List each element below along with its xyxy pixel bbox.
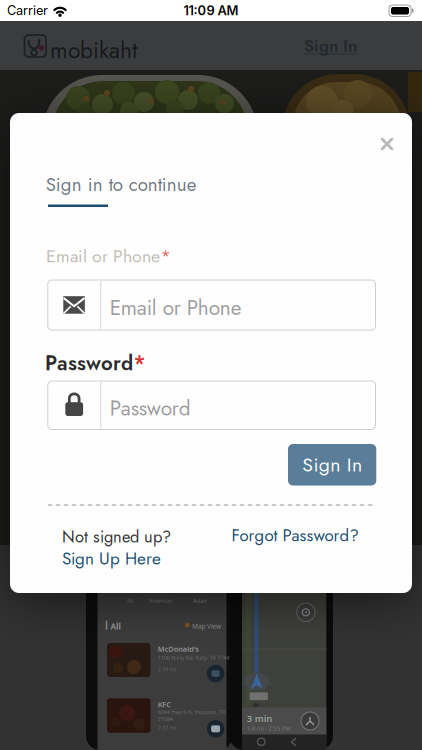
staticText: Forgot Password? (231, 523, 358, 548)
button[interactable]: Password (48, 381, 375, 429)
staticText: 77084 (158, 715, 188, 730)
staticText: 7.57 mi (158, 724, 195, 738)
staticText: Email or Phone (110, 293, 242, 323)
staticText: Email or Phone (46, 243, 160, 269)
staticText: Asian (193, 597, 221, 611)
staticText: 3 min (247, 712, 298, 737)
button[interactable]: Sign Up Here (62, 548, 232, 569)
staticText: Sign In (302, 451, 362, 479)
staticText: Map View (192, 621, 250, 640)
staticText: McDonald's (158, 644, 240, 664)
staticText: 1.4 mi · 2:55 PM (247, 724, 335, 740)
staticText: All (110, 621, 131, 643)
staticText: * (160, 243, 170, 269)
staticText: Sign In (304, 34, 357, 58)
staticText: All (127, 597, 140, 611)
staticText: 2.99 mi (158, 665, 195, 680)
staticText: KFC (158, 699, 184, 719)
staticText: Password (110, 393, 191, 423)
staticText: American (149, 597, 197, 611)
staticText: Password (45, 348, 133, 378)
button[interactable]: Email or Phone (48, 280, 375, 330)
staticText: 11:09 AM (183, 3, 238, 18)
staticText: 1100 N Fry Rd, Katy, TX 77449 (158, 654, 307, 668)
staticText: 6004 Hwy 6 N, Houston, TX (158, 708, 293, 723)
button[interactable]: Sign In (288, 444, 376, 485)
staticText: Carrier (7, 2, 48, 18)
button[interactable]: Sign In (277, 32, 357, 60)
staticText: Sign in to continue (46, 171, 197, 198)
button[interactable]: Forgot Password? (198, 525, 358, 546)
staticText: mobikaht (50, 34, 137, 67)
staticText: Not signed up? (62, 525, 171, 549)
staticText: * (133, 348, 145, 378)
button[interactable]: Close (374, 131, 400, 157)
staticText: Sign Up Here (62, 546, 161, 571)
